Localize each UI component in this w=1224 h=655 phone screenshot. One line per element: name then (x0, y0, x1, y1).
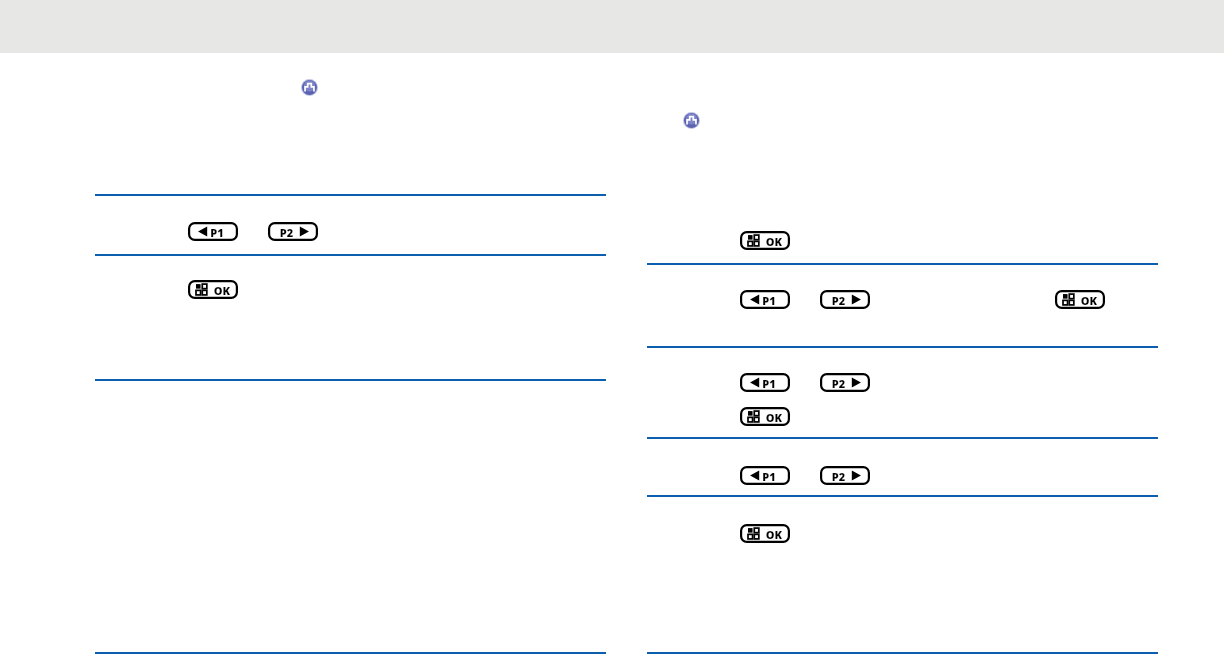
button[interactable]: P1 (740, 373, 790, 392)
staticText: P1 (755, 469, 783, 484)
staticText: P1 (755, 293, 783, 308)
staticText: P2 (827, 469, 850, 484)
button[interactable]: P2 (820, 290, 870, 309)
button[interactable]: P1 (740, 466, 790, 485)
staticText: P2 (827, 376, 850, 391)
staticText: OK (761, 527, 787, 542)
staticText: OK (1076, 293, 1102, 308)
button[interactable]: P2 (820, 373, 870, 392)
button[interactable]: P1 (740, 290, 790, 309)
staticText: OK (761, 410, 787, 425)
staticText: P2 (275, 225, 298, 240)
staticText: P2 (827, 293, 850, 308)
button[interactable]: OK (188, 280, 238, 299)
staticText: P1 (755, 376, 783, 391)
staticText: OK (209, 283, 235, 298)
button[interactable]: OK (740, 407, 790, 426)
button[interactable]: OK (1055, 290, 1105, 309)
button[interactable]: Alert tone (301, 79, 318, 96)
staticText: OK (761, 234, 787, 249)
staticText: P1 (203, 225, 231, 240)
button[interactable]: OK (740, 524, 790, 543)
button[interactable]: Alert tone (683, 112, 700, 129)
button[interactable]: OK (740, 231, 790, 250)
button[interactable]: P1 (188, 222, 238, 241)
button[interactable]: P2 (820, 466, 870, 485)
button[interactable]: P2 (268, 222, 318, 241)
